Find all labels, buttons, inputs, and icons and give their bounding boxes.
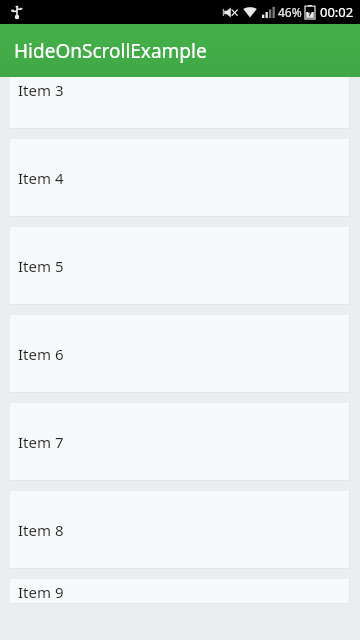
staticText: Item 9 — [18, 582, 64, 602]
button[interactable]: Item 8 — [10, 491, 350, 569]
button[interactable]: Item 4 — [10, 139, 350, 217]
staticText: Item 7 — [18, 432, 64, 452]
staticText: 00:02 — [320, 3, 354, 21]
button[interactable]: Item 3 — [10, 77, 350, 129]
staticText: Item 5 — [18, 256, 64, 276]
staticText: Item 3 — [18, 80, 64, 100]
staticText: Item 4 — [18, 168, 64, 188]
staticText: Item 6 — [18, 344, 64, 364]
button[interactable]: Item 5 — [10, 227, 350, 305]
button[interactable]: Item 6 — [10, 315, 350, 393]
button[interactable]: Item 9 — [10, 579, 350, 604]
staticText: HideOnScrollExample — [14, 38, 207, 64]
staticText: 46% — [278, 4, 302, 20]
staticText: Item 8 — [18, 520, 64, 540]
button[interactable]: Item 7 — [10, 403, 350, 481]
